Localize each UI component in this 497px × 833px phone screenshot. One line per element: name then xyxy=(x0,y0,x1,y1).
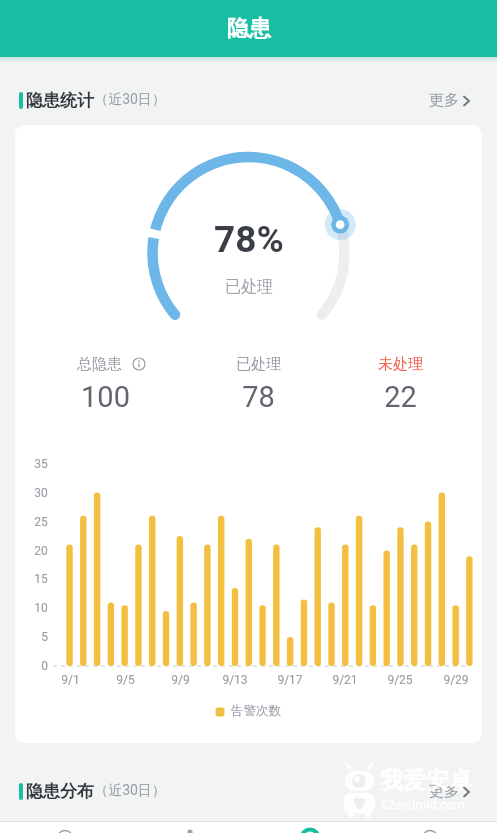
staticText: 35 xyxy=(34,457,48,471)
staticText: 隐患分布 xyxy=(26,781,94,802)
staticText: 15 xyxy=(34,572,48,586)
staticText: 隐患 xyxy=(227,15,271,43)
staticText: 10 xyxy=(34,601,48,615)
staticText: 我爱安卓 xyxy=(380,766,472,795)
staticText: 30 xyxy=(34,486,48,500)
staticText: 25 xyxy=(34,515,48,529)
staticText: 100 xyxy=(81,380,130,414)
button[interactable]: 更多 xyxy=(429,782,471,801)
staticText: 20 xyxy=(34,544,48,558)
staticText: 5 xyxy=(41,630,48,644)
staticText: 52android.com xyxy=(380,797,465,812)
button[interactable] xyxy=(373,822,497,833)
staticText: 告警次数 xyxy=(231,703,281,719)
staticText: 9/29 xyxy=(443,673,469,687)
staticText: 9/5 xyxy=(116,673,135,687)
staticText: 9/1 xyxy=(61,673,80,687)
staticText: 更多 xyxy=(429,91,459,110)
staticText: 已处理 xyxy=(236,355,281,374)
staticText: 9/25 xyxy=(387,673,413,687)
staticText: 78% xyxy=(214,218,284,261)
staticText: 总隐患 xyxy=(77,355,122,374)
button[interactable]: 更多 xyxy=(429,91,471,110)
staticText: 78 xyxy=(242,380,275,414)
button[interactable] xyxy=(249,822,373,833)
button[interactable] xyxy=(0,822,125,833)
staticText: 9/17 xyxy=(277,673,303,687)
staticText: 已处理 xyxy=(225,277,273,297)
staticText: （近30日） xyxy=(94,782,166,800)
staticText: 未处理 xyxy=(378,355,423,374)
staticText: （近30日） xyxy=(94,91,166,109)
staticText: 0 xyxy=(41,659,48,673)
staticText: 22 xyxy=(384,380,417,414)
button[interactable] xyxy=(125,822,249,833)
staticText: 9/21 xyxy=(332,673,358,687)
staticText: 9/9 xyxy=(171,673,190,687)
staticText: 9/13 xyxy=(222,673,248,687)
staticText: 更多 xyxy=(429,782,459,801)
staticText: 隐患统计 xyxy=(26,90,94,111)
